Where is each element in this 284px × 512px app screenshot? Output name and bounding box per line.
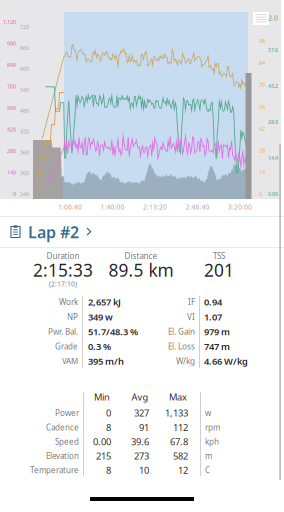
staticText: 540	[20, 86, 29, 93]
staticText: El. Loss	[168, 341, 195, 352]
staticText: (2:17:10)	[49, 280, 77, 288]
staticText: Speed	[55, 436, 79, 447]
button[interactable]: Lap #2	[0, 217, 284, 247]
staticText: Elevation	[46, 451, 79, 461]
staticText: 0	[13, 190, 16, 198]
staticText: 600	[20, 65, 29, 72]
staticText: 420	[7, 126, 16, 133]
staticText: 14	[259, 169, 265, 176]
staticText: 91	[139, 421, 149, 433]
staticText: 4.66 W/kg	[204, 355, 248, 367]
staticText: 12	[178, 464, 188, 476]
staticText: 28.8	[268, 118, 278, 126]
staticText: 720	[20, 23, 29, 31]
staticText: 1:06:40	[58, 203, 82, 211]
staticText: 2:46:40	[185, 203, 209, 211]
staticText: Lap #2	[28, 221, 79, 243]
staticText: 10	[139, 464, 149, 476]
staticText: Distance	[124, 251, 157, 261]
staticText: 1,133	[165, 407, 188, 419]
staticText: Grade	[55, 341, 78, 352]
staticText: 2:13:20	[143, 203, 167, 211]
staticText: 747 m	[204, 340, 230, 353]
staticText: 215	[96, 450, 111, 462]
staticText: 1.07	[204, 311, 222, 323]
staticText: 28	[259, 147, 265, 154]
staticText: 201	[204, 258, 234, 281]
staticText: 98	[259, 37, 265, 45]
staticText: Max	[169, 391, 187, 403]
staticText: 840	[7, 61, 16, 69]
staticText: W/kg	[176, 356, 195, 366]
staticText: 39.6	[131, 435, 149, 448]
staticText: m	[205, 451, 212, 461]
staticText: 420	[20, 128, 29, 135]
staticText: 3:20:00	[228, 203, 252, 211]
staticText: 0	[259, 191, 262, 198]
staticText: 273	[134, 450, 149, 462]
staticText: 300	[20, 170, 29, 177]
staticText: 8	[106, 421, 111, 433]
staticText: 51.7/48.3 %	[88, 325, 138, 338]
staticText: 8	[106, 464, 111, 476]
staticText: 42	[259, 125, 265, 132]
staticText: VI	[187, 311, 195, 322]
staticText: 582	[173, 450, 188, 462]
staticText: El. Gain	[168, 326, 195, 337]
staticText: 140	[7, 169, 16, 176]
staticText: 0.00	[268, 190, 278, 198]
staticText: 0	[106, 407, 111, 419]
staticText: 480	[20, 107, 29, 114]
staticText: VAM	[62, 356, 78, 366]
staticText: 0.94	[204, 296, 222, 308]
staticText: Temperature	[30, 465, 79, 475]
staticText: 240	[20, 191, 29, 198]
staticText: 980	[7, 40, 16, 47]
staticText: Cadence	[46, 422, 79, 433]
staticText: Pwr. Bal.	[48, 326, 78, 337]
staticText: 660	[20, 44, 29, 51]
staticText: 112	[173, 421, 188, 433]
staticText: rpm	[205, 422, 220, 433]
staticText: 89.5 km	[108, 258, 173, 281]
staticText: 560	[7, 104, 16, 112]
staticText: 979 m	[204, 325, 230, 338]
staticText: 1:40:00	[100, 203, 124, 211]
staticText: Work	[59, 297, 78, 307]
staticText: C	[205, 465, 210, 475]
staticText: Duration	[46, 251, 79, 261]
staticText: Min	[94, 391, 110, 403]
staticText: 360	[20, 149, 29, 156]
staticText: 0.3 %	[88, 340, 111, 353]
staticText: 700	[7, 83, 16, 90]
staticText: 70	[259, 81, 265, 88]
staticText: 2,657 kJ	[88, 296, 121, 308]
staticText: 2.0	[268, 14, 278, 22]
staticText: 327	[134, 407, 149, 419]
staticText: 280	[7, 147, 16, 155]
staticText: 67.8	[170, 435, 188, 448]
staticText: 349 w	[88, 311, 113, 323]
staticText: 395 m/h	[88, 355, 124, 367]
staticText: Avg	[131, 391, 148, 403]
staticText: 57.6	[268, 46, 278, 54]
staticText: 84	[259, 59, 265, 66]
staticText: 0.00	[93, 435, 111, 448]
staticText: w	[205, 408, 211, 418]
staticText: NP	[67, 311, 78, 322]
staticText: 2:15:33	[33, 258, 93, 281]
staticText: TSS	[213, 251, 225, 261]
staticText: IF	[188, 297, 195, 307]
staticText: 56	[259, 103, 265, 110]
staticText: kph	[205, 436, 219, 447]
staticText: 1,120	[3, 18, 16, 26]
staticText: 43.2	[268, 82, 278, 90]
staticText: Power	[55, 408, 79, 418]
staticText: 14.4	[268, 154, 278, 162]
